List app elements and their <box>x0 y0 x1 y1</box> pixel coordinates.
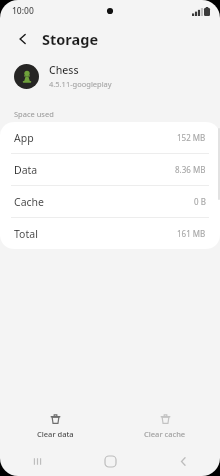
button[interactable]: Back <box>12 28 34 50</box>
button[interactable]: Clear data <box>0 404 110 446</box>
staticText: 152 MB <box>177 132 206 143</box>
staticText: App <box>14 131 34 145</box>
button[interactable]: Total <box>0 218 220 249</box>
staticText: 8.36 MB <box>175 164 206 175</box>
staticText: Clear data <box>37 429 74 439</box>
staticText: 161 MB <box>177 228 206 239</box>
staticText: Storage <box>42 29 99 49</box>
staticText: Total <box>14 227 38 241</box>
button[interactable]: Cache <box>0 186 220 218</box>
button[interactable]: App <box>0 122 220 154</box>
staticText: 10:00 <box>12 5 34 17</box>
staticText: 4.5.11-googleplay <box>49 79 112 89</box>
button[interactable]: Clear cache <box>110 404 220 446</box>
button[interactable]: Data <box>0 154 220 186</box>
staticText: 0 B <box>194 196 206 207</box>
staticText: Chess <box>49 63 79 77</box>
button[interactable]: Home <box>74 446 147 476</box>
staticText: Data <box>14 163 38 177</box>
staticText: Space used <box>14 109 54 119</box>
button[interactable]: Recents <box>0 446 74 476</box>
button[interactable]: Back <box>147 446 220 476</box>
staticText: Clear cache <box>144 429 186 439</box>
staticText: Cache <box>14 195 44 209</box>
